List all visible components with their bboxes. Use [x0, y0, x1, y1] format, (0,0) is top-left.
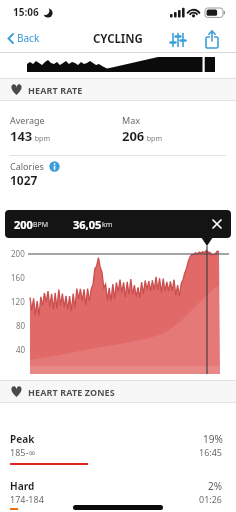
staticText: 174-184: [10, 493, 44, 505]
staticText: Average: [10, 114, 45, 126]
staticText: Hard: [10, 479, 35, 493]
staticText: HEART RATE: [28, 84, 83, 96]
staticText: 40: [16, 344, 26, 355]
staticText: 16:45: [199, 446, 223, 458]
staticText: Peak: [10, 432, 35, 446]
staticText: 15:06: [13, 5, 39, 19]
staticText: 200: [14, 217, 33, 232]
button[interactable]: Peak: [0, 431, 236, 469]
staticText: 160: [11, 272, 25, 283]
staticText: 01:26: [199, 493, 223, 505]
staticText: 200: [11, 248, 25, 259]
button[interactable]: [168, 31, 188, 49]
staticText: km: [102, 220, 113, 230]
button[interactable]: Hard: [0, 478, 236, 512]
staticText: 185-∞: [10, 446, 36, 458]
staticText: CYCLING: [93, 31, 143, 47]
staticText: 1027: [10, 172, 38, 188]
staticText: 143: [10, 127, 33, 145]
staticText: HEART RATE ZONES: [28, 386, 115, 398]
staticText: 19%: [203, 432, 223, 446]
staticText: 2%: [208, 479, 223, 493]
staticText: Calories: [10, 160, 44, 172]
staticText: 80: [16, 320, 26, 331]
staticText: 36,05: [73, 217, 102, 232]
button[interactable]: [202, 29, 224, 51]
button[interactable]: 200: [5, 210, 231, 238]
staticText: bpm: [145, 134, 162, 144]
staticText: Max: [122, 114, 140, 126]
button[interactable]: Back: [4, 26, 48, 50]
staticText: 120: [11, 296, 25, 307]
staticText: bpm: [33, 134, 50, 144]
staticText: 206: [122, 127, 145, 145]
staticText: BPM: [33, 220, 49, 230]
staticText: Back: [17, 31, 40, 45]
